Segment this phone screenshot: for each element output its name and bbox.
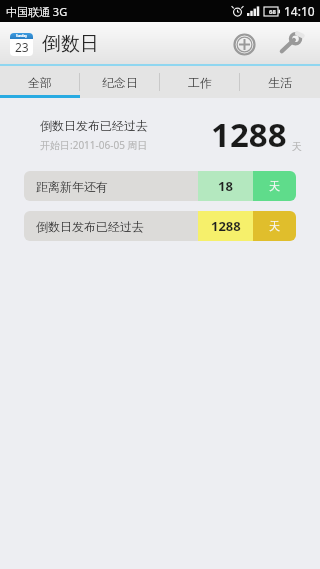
- staticText: 开始日:2011-06-05 周日: [40, 138, 148, 152]
- button[interactable]: 生活: [240, 66, 320, 98]
- staticText: 中国联通 3G: [6, 4, 68, 19]
- staticText: 倒数日发布已经过去: [40, 118, 148, 133]
- staticText: 工作: [188, 75, 212, 90]
- staticText: 23: [15, 39, 29, 55]
- button[interactable]: 纪念日: [80, 66, 160, 98]
- button[interactable]: 全部: [0, 66, 80, 98]
- button[interactable]: Add: [224, 24, 264, 64]
- button[interactable]: Settings: [270, 24, 310, 64]
- staticText: 纪念日: [102, 75, 138, 90]
- staticText: 1288: [211, 112, 287, 157]
- button[interactable]: 倒数日发布已经过去: [24, 211, 296, 241]
- button[interactable]: 距离新年还有: [24, 171, 296, 201]
- staticText: 距离新年还有: [36, 179, 108, 194]
- staticText: 14:10: [284, 3, 315, 19]
- staticText: 天: [292, 140, 302, 153]
- staticText: 倒数日发布已经过去: [36, 219, 144, 234]
- staticText: 生活: [268, 75, 292, 90]
- staticText: 天: [269, 219, 280, 233]
- staticText: 倒数日: [42, 32, 99, 56]
- staticText: 天: [269, 179, 280, 193]
- staticText: 1288: [211, 217, 241, 235]
- staticText: 全部: [28, 75, 52, 90]
- staticText: Sunday: [16, 34, 27, 38]
- staticText: 68: [269, 8, 276, 16]
- staticText: 18: [218, 177, 233, 195]
- button[interactable]: 工作: [160, 66, 240, 98]
